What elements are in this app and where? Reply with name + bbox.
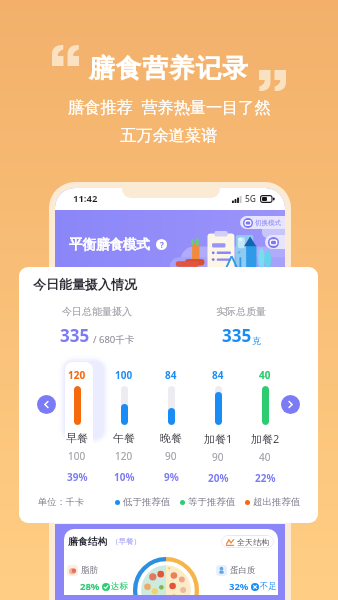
staticText: 120 — [115, 449, 133, 463]
button[interactable]: 全天结构 — [226, 535, 269, 548]
staticText: 膳食推荐 营养热量一目了然 — [68, 96, 271, 118]
staticText: 今日能量摄入情况 — [33, 276, 137, 292]
staticText: 120 — [68, 368, 86, 382]
staticText: 9% — [164, 470, 179, 484]
staticText: 90 — [165, 449, 177, 463]
button[interactable]: Next — [281, 395, 300, 414]
staticText: 100 — [68, 449, 86, 463]
staticText: 全天结构 — [237, 537, 269, 547]
button[interactable]: 84 — [200, 363, 236, 485]
staticText: 平衡膳食模式 — [69, 236, 150, 253]
button[interactable]: Previous — [37, 395, 56, 414]
staticText: 单位：千卡 — [38, 496, 84, 508]
staticText: 28% — [80, 580, 100, 593]
staticText: 今日总能量摄入 — [62, 305, 132, 318]
staticText: 低于推荐值 — [123, 496, 171, 508]
staticText: 晚餐 — [160, 431, 182, 445]
button[interactable]: 100 — [106, 363, 142, 484]
staticText: 达标 — [111, 581, 128, 592]
staticText: 5G — [245, 193, 257, 205]
staticText: 100 — [115, 368, 133, 382]
staticText: 等于推荐值 — [188, 496, 236, 508]
button[interactable]: 切换模式 — [240, 216, 285, 229]
button[interactable]: Help — [156, 239, 167, 250]
staticText: 午餐 — [113, 431, 135, 445]
staticText: 克 — [252, 335, 261, 346]
staticText: 90 — [212, 450, 224, 464]
staticText: 膳食营养记录 — [89, 52, 250, 84]
staticText: 40 — [259, 368, 271, 382]
staticText: 加餐2 — [251, 431, 280, 446]
button[interactable]: 84 — [153, 363, 189, 484]
staticText: 不足 — [260, 581, 277, 592]
staticText: 五万余道菜谱 — [120, 125, 218, 145]
staticText: 11:42 — [73, 192, 98, 205]
staticText: 335 — [60, 324, 90, 347]
staticText: 蛋白质 — [230, 565, 256, 576]
staticText: 84 — [165, 368, 177, 382]
staticText: 32% — [229, 580, 249, 593]
staticText: （早餐） — [111, 537, 141, 546]
staticText: 22% — [255, 471, 276, 485]
staticText: 切换模式 — [255, 219, 281, 227]
staticText: 超出推荐值 — [253, 496, 301, 508]
staticText: 实际总质量 — [216, 305, 266, 318]
button[interactable]: 40 — [247, 363, 283, 485]
staticText: 20% — [208, 471, 229, 485]
staticText: ? — [160, 239, 164, 250]
staticText: 膳食结构 — [68, 536, 108, 548]
staticText: 脂肪 — [81, 565, 98, 576]
staticText: 84 — [212, 368, 224, 382]
staticText: 10% — [114, 470, 135, 484]
staticText: 40 — [259, 450, 271, 464]
staticText: 加餐1 — [204, 431, 233, 446]
button[interactable]: Switch mode — [265, 235, 285, 249]
staticText: 335 — [222, 324, 252, 347]
staticText: 39% — [67, 470, 88, 484]
button[interactable]: 120 — [59, 363, 95, 484]
staticText: / 680千卡 — [93, 333, 135, 346]
staticText: 早餐 — [66, 431, 88, 445]
